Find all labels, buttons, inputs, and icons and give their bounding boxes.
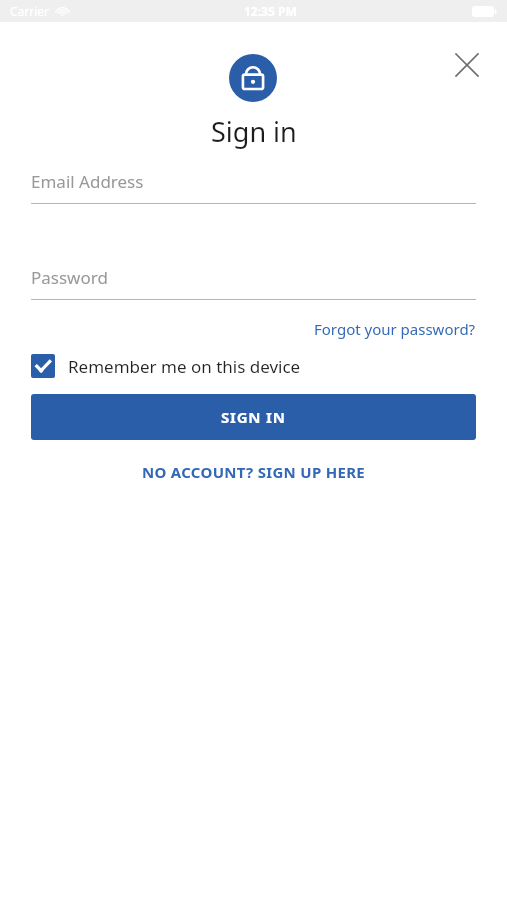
button[interactable]: Password <box>31 262 476 300</box>
button[interactable]: Remember me on this device <box>31 354 476 378</box>
staticText: Sign in <box>211 113 297 150</box>
staticText: Email Address <box>31 170 144 193</box>
button[interactable]: NO ACCOUNT? SIGN UP HERE <box>134 456 374 488</box>
staticText: Password <box>31 266 108 289</box>
staticText: Remember me on this device <box>68 355 301 378</box>
button[interactable]: Forgot your password? <box>314 317 476 341</box>
other: Secure sign in <box>229 54 277 102</box>
button[interactable]: Email Address <box>31 166 476 204</box>
button[interactable]: Close <box>444 42 490 88</box>
staticText: 12:35 PM <box>244 3 297 19</box>
staticText: NO ACCOUNT? SIGN UP HERE <box>142 462 366 482</box>
button[interactable]: SIGN IN <box>31 394 476 440</box>
staticText: Forgot your password? <box>314 319 476 339</box>
staticText: SIGN IN <box>221 407 286 427</box>
staticText: Carrier <box>10 3 50 19</box>
